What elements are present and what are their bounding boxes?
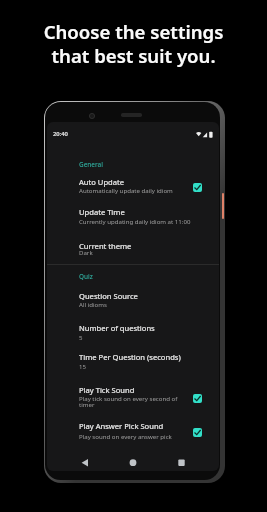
staticText: Dark (79, 248, 93, 256)
staticText: Quiz (79, 272, 93, 281)
staticText: Current theme (79, 241, 132, 251)
staticText: Automatically update daily idiom (79, 186, 173, 194)
button[interactable] (119, 452, 147, 471)
staticText: Choose the settings that best suit you. (0, 19, 267, 68)
staticText: 5 (79, 333, 83, 341)
button[interactable] (47, 418, 219, 446)
staticText: Number of questions (79, 323, 155, 333)
staticText: Time Per Question (seconds) (79, 352, 181, 362)
staticText: Currently updating daily idiom at 11:00 (79, 217, 191, 225)
button[interactable] (47, 288, 219, 318)
button[interactable] (167, 452, 195, 471)
staticText: All idioms (79, 300, 107, 308)
button[interactable] (47, 320, 219, 348)
staticText: Play Tick Sound (79, 385, 135, 395)
staticText: General (79, 160, 103, 169)
button[interactable] (47, 382, 219, 418)
staticText: Play tick sound on every second of timer (79, 394, 178, 408)
button[interactable] (47, 204, 219, 236)
button[interactable] (71, 452, 99, 471)
staticText: 15 (79, 362, 86, 370)
staticText: Question Source (79, 291, 138, 301)
button[interactable] (193, 428, 202, 437)
button[interactable] (47, 238, 219, 266)
staticText: 20:40 (53, 130, 68, 138)
button[interactable] (193, 183, 202, 192)
button[interactable] (47, 350, 219, 380)
button[interactable] (193, 394, 202, 403)
staticText: Update Time (79, 207, 125, 217)
staticText: Auto Update (79, 177, 125, 187)
staticText: Play sound on every answer pick (79, 432, 172, 440)
button[interactable] (47, 172, 219, 204)
staticText: Play Answer Pick Sound (79, 421, 164, 431)
